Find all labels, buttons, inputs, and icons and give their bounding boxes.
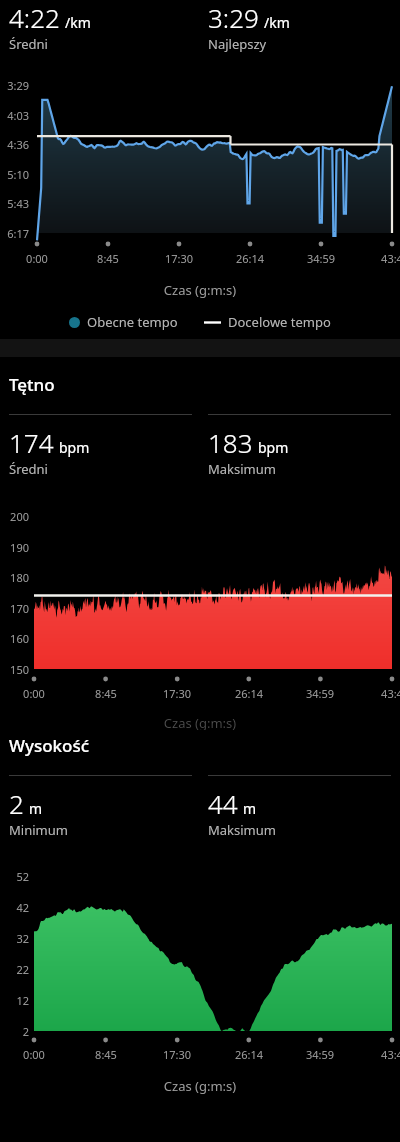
staticText: Średni: [9, 35, 48, 53]
staticText: bpm: [59, 438, 90, 457]
staticText: 34:59: [300, 686, 340, 701]
staticText: Czas (g:m:s): [0, 281, 400, 299]
staticText: m: [29, 799, 43, 818]
button[interactable]: 44: [208, 775, 391, 839]
button[interactable]: 2: [9, 775, 192, 839]
staticText: 43:4: [372, 686, 400, 701]
staticText: 34:59: [301, 251, 341, 266]
staticText: 26:14: [229, 686, 269, 701]
staticText: 160: [0, 631, 29, 646]
staticText: 42: [0, 900, 29, 915]
staticText: Czas (g:m:s): [0, 714, 400, 730]
staticText: 4:22: [9, 0, 60, 35]
button[interactable]: 174: [9, 414, 192, 478]
staticText: 17:30: [157, 686, 197, 701]
staticText: 200: [0, 509, 29, 524]
staticText: Obecne tempo: [87, 313, 178, 331]
staticText: /km: [65, 13, 91, 32]
staticText: 2: [9, 786, 24, 821]
staticText: m: [243, 799, 257, 818]
button[interactable]: 4:22: [9, 0, 192, 53]
staticText: 6:17: [0, 226, 29, 241]
staticText: Docelowe tempo: [228, 313, 331, 331]
staticText: Maksimum: [208, 821, 276, 839]
button[interactable]: 3:29: [208, 0, 391, 53]
staticText: 5:10: [0, 167, 29, 182]
staticText: /km: [264, 13, 290, 32]
staticText: 2: [0, 1024, 29, 1039]
staticText: 43:4: [372, 251, 400, 266]
staticText: Najlepszy: [208, 35, 267, 53]
staticText: 34:59: [300, 1047, 340, 1062]
staticText: 150: [0, 662, 29, 677]
button[interactable]: Docelowe tempo: [204, 313, 331, 331]
staticText: Tętno: [9, 373, 55, 396]
staticText: Średni: [9, 460, 48, 478]
staticText: 26:14: [229, 1047, 269, 1062]
staticText: Wysokość: [9, 734, 90, 757]
staticText: 12: [0, 993, 29, 1008]
staticText: 8:45: [86, 1047, 126, 1062]
staticText: 32: [0, 931, 29, 946]
staticText: 4:03: [0, 108, 29, 123]
button[interactable]: Obecne tempo: [69, 313, 178, 331]
staticText: 183: [208, 425, 253, 460]
staticText: Czas (g:m:s): [0, 1077, 400, 1095]
staticText: Minimum: [9, 821, 68, 839]
staticText: 26:14: [230, 251, 270, 266]
staticText: 174: [9, 425, 54, 460]
staticText: 3:29: [208, 0, 259, 35]
staticText: 8:45: [88, 251, 128, 266]
staticText: 190: [0, 540, 29, 555]
staticText: 22: [0, 962, 29, 977]
staticText: 0:00: [17, 251, 57, 266]
staticText: 44: [208, 786, 238, 821]
staticText: 52: [0, 869, 29, 884]
staticText: 5:43: [0, 196, 29, 211]
staticText: 17:30: [159, 251, 199, 266]
button[interactable]: 183: [208, 414, 391, 478]
staticText: 170: [0, 601, 29, 616]
staticText: 0:00: [14, 686, 54, 701]
staticText: 0:00: [14, 1047, 54, 1062]
staticText: 180: [0, 570, 29, 585]
staticText: 8:45: [86, 686, 126, 701]
staticText: 17:30: [157, 1047, 197, 1062]
staticText: 3:29: [0, 78, 29, 93]
staticText: Maksimum: [208, 460, 276, 478]
staticText: 43:4: [372, 1047, 400, 1062]
staticText: 4:36: [0, 137, 29, 152]
staticText: bpm: [258, 438, 289, 457]
